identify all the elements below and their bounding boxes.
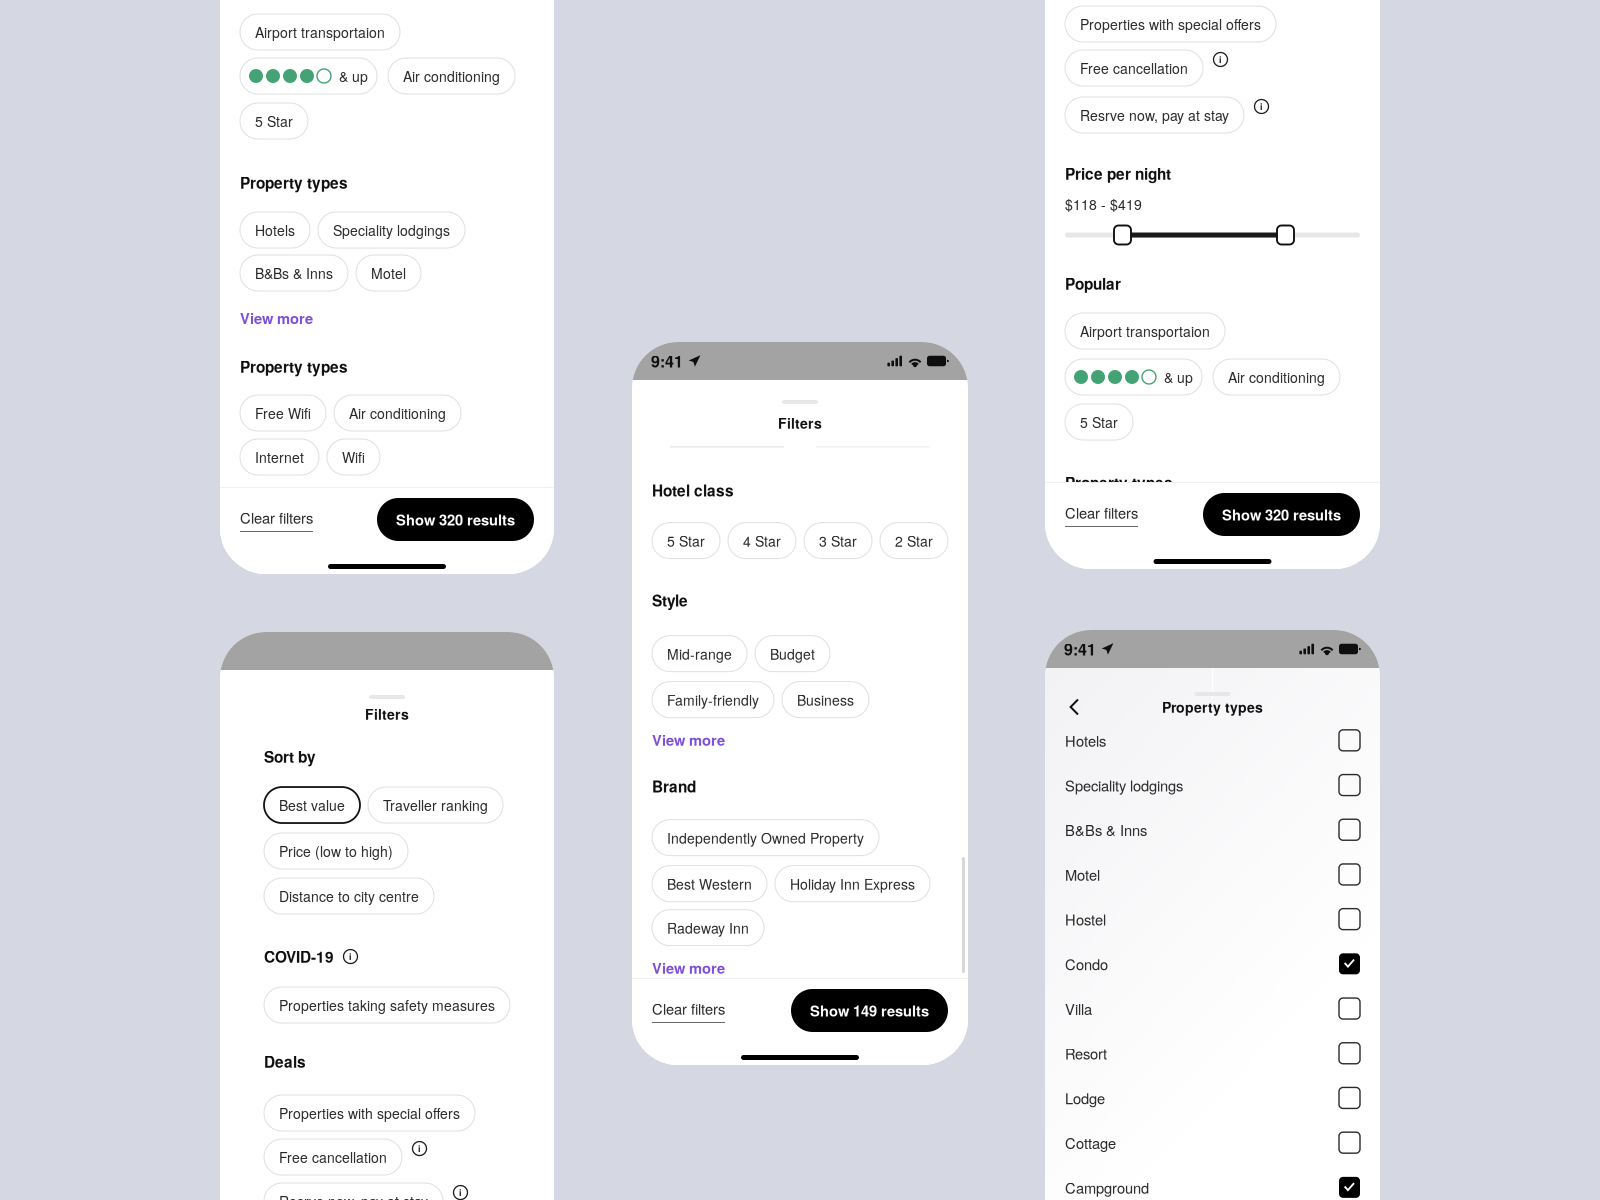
button[interactable]: Holiday Inn Express xyxy=(775,866,930,902)
button[interactable]: Free Wifi xyxy=(240,395,326,431)
button[interactable]: 4 Star xyxy=(728,523,796,559)
staticText: & up xyxy=(1164,367,1193,387)
button[interactable]: View more xyxy=(240,311,313,325)
button[interactable]: Free cancellation xyxy=(1065,50,1203,86)
button[interactable]: Resort xyxy=(1065,1031,1360,1076)
button[interactable]: Hostel xyxy=(1065,897,1360,941)
button[interactable]: Best value xyxy=(264,787,360,823)
button[interactable]: B&Bs & Inns xyxy=(1065,807,1360,852)
button[interactable]: 3 Star xyxy=(804,523,872,559)
button[interactable]: View more xyxy=(652,961,725,975)
button[interactable]: Show 320 results xyxy=(377,498,534,541)
button[interactable]: Resrve now, pay at stay xyxy=(1065,97,1244,133)
button[interactable]: Traveller ranking xyxy=(368,787,503,823)
staticText: i xyxy=(459,1186,462,1199)
staticText: Free cancellation xyxy=(1080,58,1188,78)
staticText: Property types xyxy=(240,171,348,193)
button[interactable]: Independently Owned Property xyxy=(652,820,879,856)
staticText: Resrve now, pay at stay xyxy=(279,1191,428,1200)
staticText: B&Bs & Inns xyxy=(255,263,333,283)
staticText: Hotels xyxy=(1065,730,1106,751)
button[interactable]: Airport transportaion xyxy=(1065,313,1225,349)
button[interactable]: Hotels xyxy=(1065,718,1360,763)
button[interactable]: Motel xyxy=(1065,852,1360,897)
button[interactable]: Internet xyxy=(240,439,319,475)
staticText: Traveller ranking xyxy=(383,795,488,815)
staticText: Price per night xyxy=(1065,162,1171,184)
staticText: Campground xyxy=(1065,1177,1149,1198)
button[interactable]: Clear filters xyxy=(1065,502,1138,527)
button[interactable]: Mid-range xyxy=(652,636,747,672)
button[interactable]: Clear filters xyxy=(240,507,313,532)
button[interactable]: Wifi xyxy=(327,439,380,475)
button[interactable]: Back xyxy=(1063,696,1085,718)
staticText: Show 320 results xyxy=(396,509,515,530)
button[interactable]: Campground xyxy=(1065,1165,1360,1200)
staticText: 3 Star xyxy=(819,531,857,551)
button[interactable]: 5 Star xyxy=(240,103,308,139)
staticText: Best Western xyxy=(667,874,752,894)
staticText: 5 Star xyxy=(1080,412,1118,432)
staticText: Properties with special offers xyxy=(1080,14,1261,34)
staticText: View more xyxy=(652,729,725,750)
button[interactable]: Business xyxy=(782,682,869,718)
staticText: Resort xyxy=(1065,1043,1107,1064)
button[interactable]: Clear filters xyxy=(652,998,725,1023)
staticText: Property types xyxy=(1162,697,1263,717)
staticText: Radeway Inn xyxy=(667,918,749,938)
button[interactable]: Hotels xyxy=(240,212,310,248)
staticText: Air conditioning xyxy=(403,66,500,86)
staticText: Independently Owned Property xyxy=(667,828,864,848)
staticText: Filters xyxy=(365,704,409,724)
button[interactable]: 2 Star xyxy=(880,523,948,559)
staticText: 5 Star xyxy=(667,531,705,551)
button[interactable]: & up xyxy=(1065,359,1202,395)
button[interactable]: Distance to city centre xyxy=(264,878,434,914)
button[interactable]: Speciality lodgings xyxy=(318,212,465,248)
button[interactable]: Air conditioning xyxy=(334,395,461,431)
button[interactable]: Budget xyxy=(755,636,830,672)
staticText: 4 Star xyxy=(743,531,781,551)
button[interactable]: B&Bs & Inns xyxy=(240,255,348,291)
staticText: 5 Star xyxy=(255,111,293,131)
staticText: i xyxy=(349,950,352,963)
staticText: Motel xyxy=(371,263,406,283)
staticText: Free Wifi xyxy=(255,403,311,423)
button[interactable]: Lodge xyxy=(1065,1076,1360,1120)
staticText: & up xyxy=(339,66,368,86)
staticText: Filters xyxy=(778,413,822,433)
staticText: 9:41 xyxy=(1064,637,1096,660)
button[interactable]: Motel xyxy=(356,255,421,291)
staticText: Sort by xyxy=(264,746,316,768)
staticText: Hotel class xyxy=(652,479,734,501)
button[interactable]: Radeway Inn xyxy=(652,910,764,946)
button[interactable]: Best Western xyxy=(652,866,767,902)
button[interactable]: Properties with special offers xyxy=(1065,6,1276,42)
button[interactable]: Speciality lodgings xyxy=(1065,763,1360,807)
button[interactable]: 5 Star xyxy=(652,523,720,559)
staticText: Style xyxy=(652,589,688,611)
button[interactable]: Show 149 results xyxy=(791,989,948,1032)
button[interactable]: Price (low to high) xyxy=(264,833,408,869)
staticText: Business xyxy=(797,690,854,710)
button[interactable]: Villa xyxy=(1065,986,1360,1031)
button[interactable]: Show 320 results xyxy=(1203,493,1360,536)
button[interactable]: Cottage xyxy=(1065,1120,1360,1165)
button[interactable]: Condo xyxy=(1065,941,1360,986)
button[interactable]: Air conditioning xyxy=(1213,359,1340,395)
button[interactable]: Airport transportaion xyxy=(240,14,400,50)
button[interactable]: View more xyxy=(652,733,725,747)
button[interactable]: Properties with special offers xyxy=(264,1095,475,1131)
button[interactable]: & up xyxy=(240,58,377,94)
staticText: Cottage xyxy=(1065,1132,1116,1153)
staticText: 9:41 xyxy=(651,349,683,372)
button[interactable]: Properties taking safety measures xyxy=(264,987,510,1023)
button[interactable]: 5 Star xyxy=(1065,404,1133,440)
button[interactable]: Family-friendly xyxy=(652,682,774,718)
staticText: Resrve now, pay at stay xyxy=(1080,105,1229,125)
button[interactable]: Resrve now, pay at stay xyxy=(264,1183,443,1200)
staticText: Show 149 results xyxy=(810,1000,929,1021)
button[interactable]: Free cancellation xyxy=(264,1139,402,1175)
button[interactable]: Air conditioning xyxy=(388,58,515,94)
staticText: B&Bs & Inns xyxy=(1065,819,1147,840)
